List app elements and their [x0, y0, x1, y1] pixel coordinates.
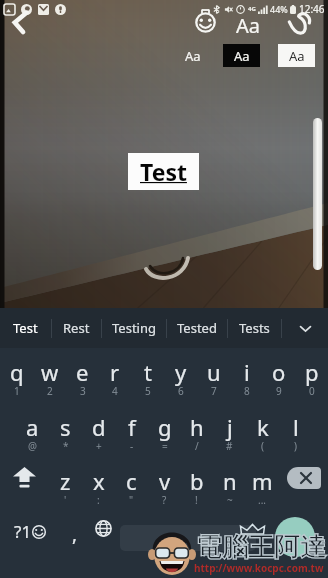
staticText: # [226, 439, 233, 453]
button[interactable]: c [115, 457, 148, 512]
button[interactable]: d [82, 403, 115, 458]
staticText: g [158, 412, 172, 442]
staticText: a [26, 412, 39, 442]
staticText: Aa [236, 12, 260, 34]
button[interactable]: i [230, 348, 263, 403]
staticText: 5 [145, 384, 151, 398]
button[interactable]: b [180, 457, 213, 512]
staticText: v [159, 466, 171, 496]
button[interactable]: f [115, 403, 148, 458]
staticText: : [97, 493, 100, 507]
staticText: Aa [289, 47, 305, 65]
staticText: 0 [309, 384, 315, 398]
staticText: http://www.kocpc.com.tw [194, 561, 324, 575]
staticText: 電腦王阿達 [196, 531, 326, 564]
button[interactable]: a [16, 403, 49, 458]
button[interactable]: l [279, 403, 312, 458]
staticText: Rest [63, 319, 90, 337]
button[interactable]: Draw [288, 12, 314, 38]
staticText: 1 [14, 384, 20, 398]
staticText: 12:46 [299, 2, 325, 16]
button[interactable]: Enter [262, 512, 328, 567]
staticText: u [207, 357, 221, 387]
staticText: r [110, 357, 120, 387]
staticText: d [92, 412, 106, 442]
button[interactable]: j [213, 403, 246, 458]
button[interactable]: m [246, 457, 279, 512]
staticText: Aa [234, 47, 250, 65]
button[interactable]: Aa [174, 44, 211, 67]
staticText: ~ [227, 493, 233, 507]
button[interactable]: w [33, 348, 66, 403]
staticText: * [63, 439, 69, 453]
staticText: h [190, 412, 204, 442]
button[interactable]: v [148, 457, 181, 512]
staticText: s [60, 412, 71, 442]
staticText: ?1 [14, 520, 32, 543]
button[interactable]: Symbols [0, 512, 60, 567]
staticText: 8 [244, 384, 250, 398]
button[interactable]: h [180, 403, 213, 458]
staticText: n [223, 466, 237, 496]
button[interactable]: z [49, 457, 82, 512]
button[interactable]: q [0, 348, 33, 403]
button[interactable]: x [82, 457, 115, 512]
button[interactable]: Rest [52, 308, 101, 348]
staticText: ! [195, 493, 198, 507]
staticText: ' [64, 493, 67, 507]
button[interactable]: y [164, 348, 197, 403]
staticText: Test [13, 319, 38, 337]
staticText: ? [162, 493, 167, 507]
button[interactable]: p [295, 348, 328, 403]
staticText: m [252, 466, 273, 496]
staticText: 7 [211, 384, 217, 398]
staticText: - [130, 439, 134, 453]
button[interactable]: Shift [0, 457, 49, 512]
staticText: c [126, 466, 137, 496]
button[interactable]: n [213, 457, 246, 512]
button[interactable]: s [49, 403, 82, 458]
button[interactable]: t [131, 348, 164, 403]
staticText: b [190, 466, 204, 496]
button[interactable]: k [246, 403, 279, 458]
button[interactable]: Change language [88, 512, 118, 567]
button[interactable]: e [66, 348, 99, 403]
staticText: w [41, 357, 59, 387]
staticText: t [144, 357, 152, 387]
staticText: / [195, 439, 199, 453]
button[interactable]: Tests [228, 308, 281, 348]
staticText: o [272, 357, 286, 387]
button[interactable]: r [98, 348, 131, 403]
button[interactable]: Test [0, 308, 51, 348]
button[interactable]: o [262, 348, 295, 403]
button[interactable]: More suggestions [282, 308, 328, 348]
staticText: Test [140, 156, 187, 187]
button[interactable]: Stickers [195, 12, 216, 33]
button[interactable]: g [148, 403, 181, 458]
button[interactable]: Aa [236, 12, 266, 34]
button[interactable]: Testing [102, 308, 166, 348]
staticText: p [305, 357, 319, 387]
button[interactable]: Aa [223, 44, 260, 67]
staticText: q [10, 357, 24, 387]
staticText: 6 [178, 384, 184, 398]
staticText: ... [258, 493, 267, 507]
button[interactable]: Back [8, 10, 34, 36]
button[interactable]: Aa [278, 44, 315, 67]
staticText: 9 [276, 384, 282, 398]
button[interactable]: , [60, 512, 90, 567]
staticText: l [293, 412, 299, 442]
button[interactable]: Test [128, 153, 199, 190]
button[interactable]: u [197, 348, 230, 403]
staticText: Tests [239, 319, 270, 337]
staticText: 4G [248, 5, 256, 13]
staticText: , [72, 521, 78, 547]
staticText: ( [261, 439, 264, 453]
staticText: 3 [80, 384, 86, 398]
staticText: + [96, 439, 102, 453]
button[interactable]: Backspace [279, 457, 328, 512]
staticText: f [128, 412, 136, 442]
button[interactable]: Tested [167, 308, 227, 348]
button[interactable]: Space [118, 512, 258, 567]
staticText: 2 [47, 384, 53, 398]
